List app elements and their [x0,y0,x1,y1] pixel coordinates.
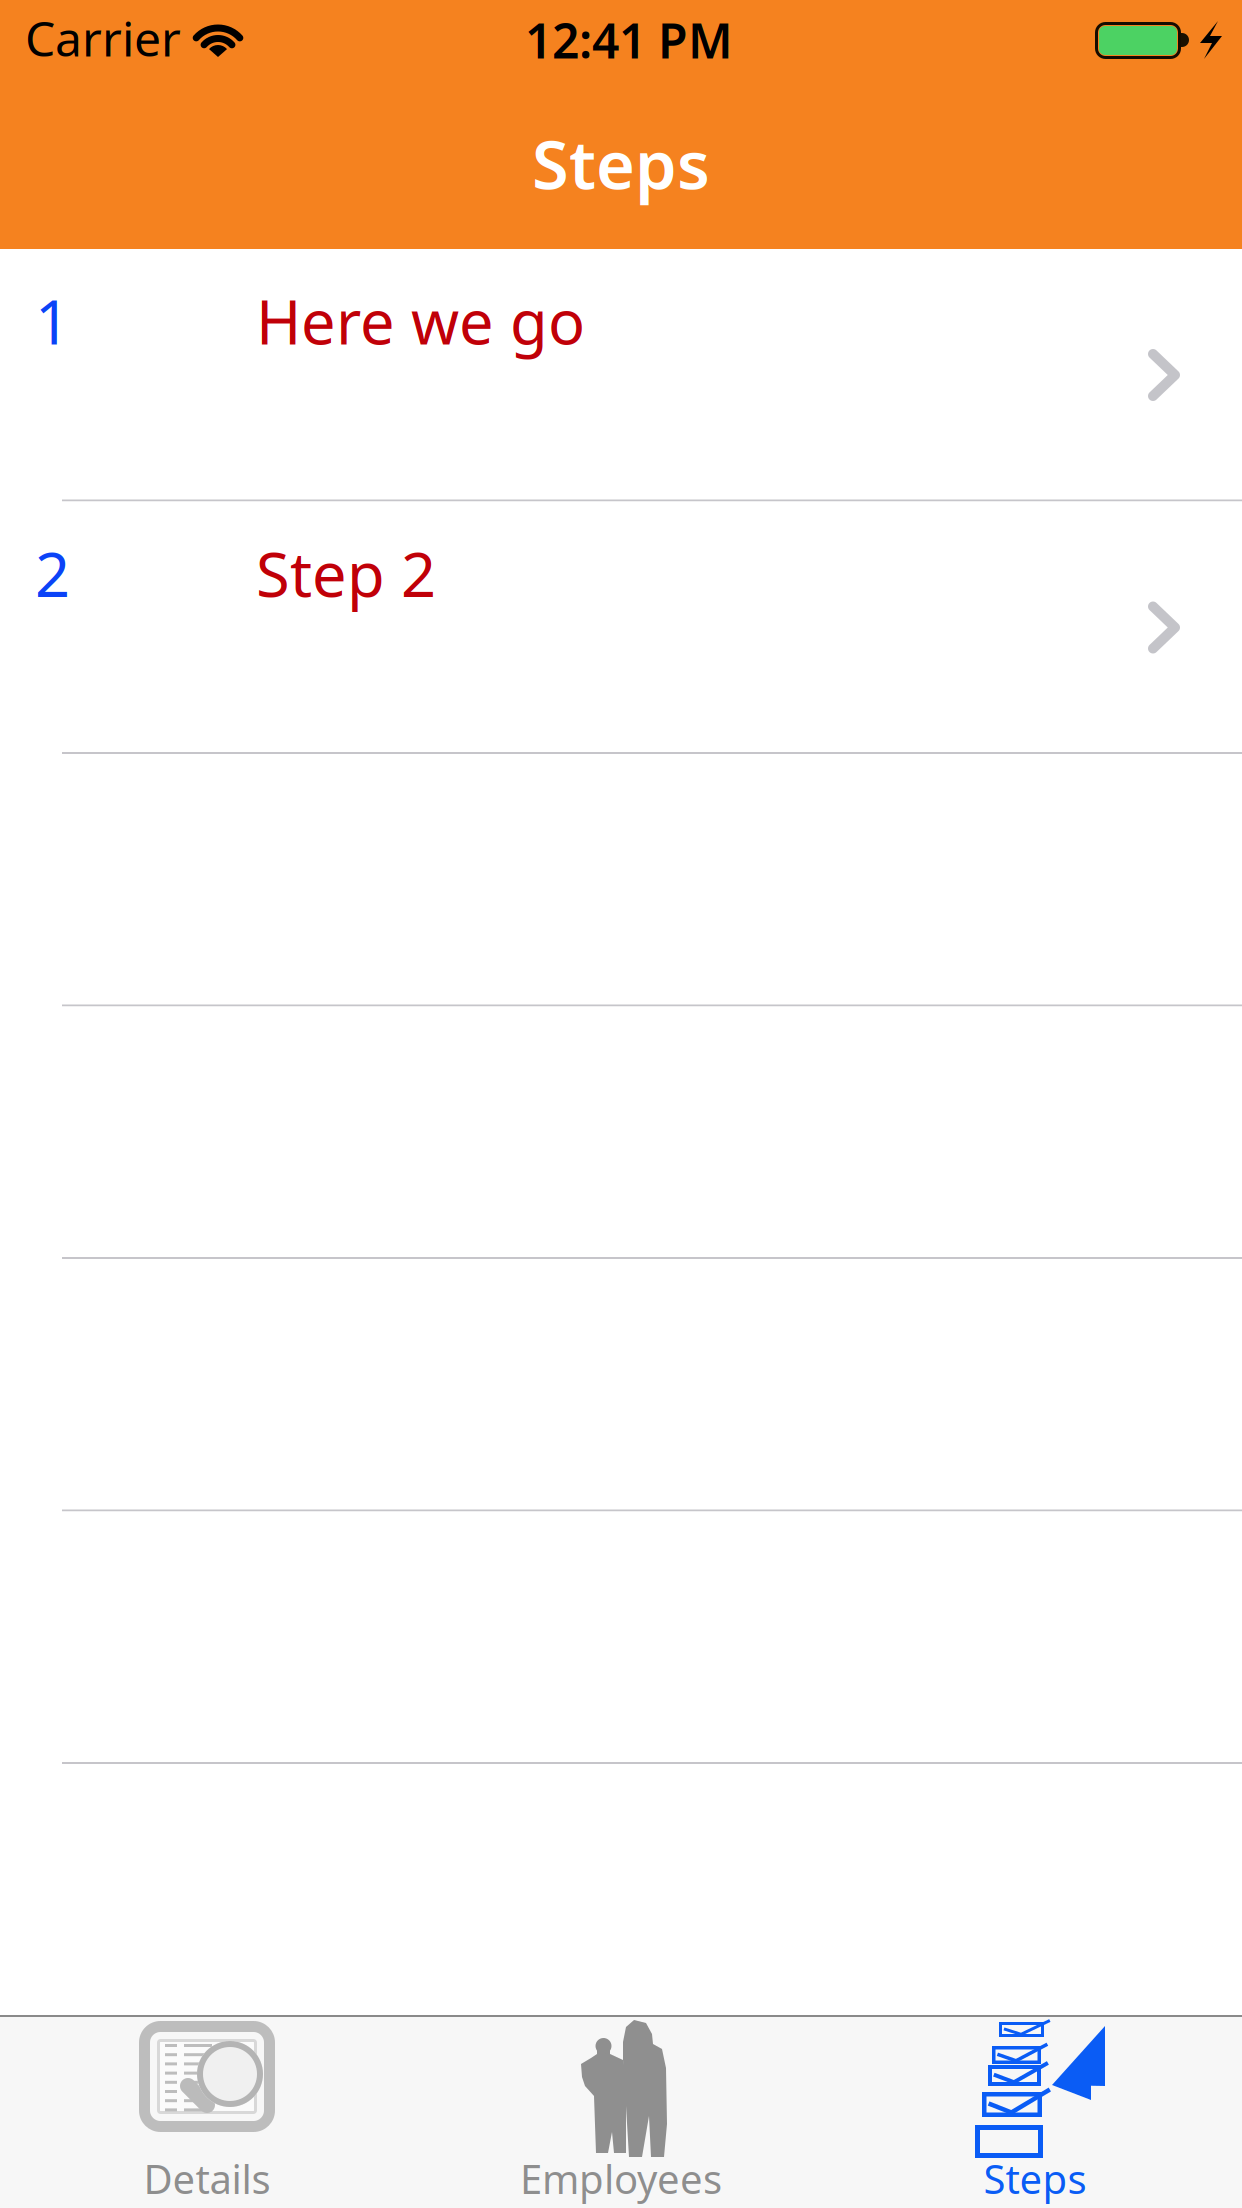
button[interactable]: 2 [0,501,1242,754]
staticText: Carrier [25,6,181,70]
staticText: Steps [532,119,710,207]
staticText: 2 [35,532,70,614]
staticText: Details [143,2152,270,2205]
staticText: Employees [520,2152,722,2205]
button[interactable]: Employees [414,2015,828,2208]
button[interactable]: 1 [0,249,1242,501]
staticText: Step 2 [256,532,436,614]
staticText: 12:41 PM [525,8,733,72]
staticText: Here we go [256,280,585,361]
staticText: Steps [983,2152,1086,2205]
staticText: 1 [35,280,70,361]
button[interactable]: Steps [828,2015,1242,2208]
button[interactable]: Details [0,2015,414,2208]
